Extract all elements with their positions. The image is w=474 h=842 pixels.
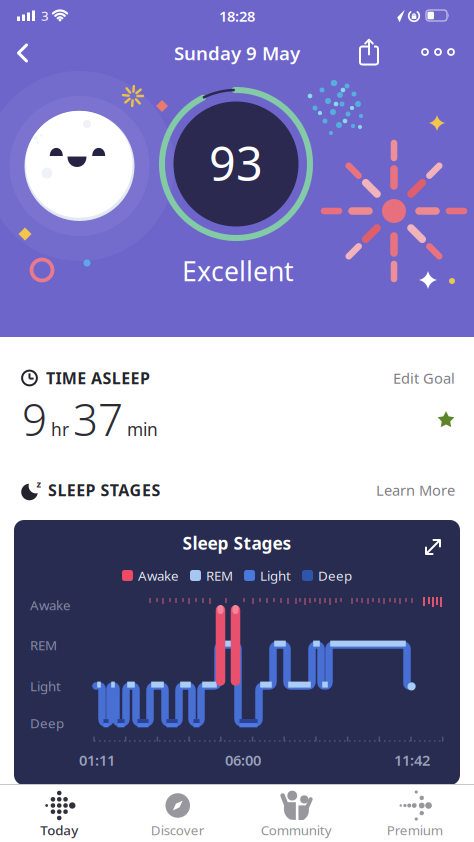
staticText: Community	[261, 821, 332, 839]
button[interactable]: Expand	[425, 539, 441, 555]
staticText: Deep	[318, 567, 352, 584]
button[interactable]: Learn More	[345, 480, 455, 500]
button[interactable]: Today	[3, 784, 115, 840]
staticText: REM	[206, 567, 233, 584]
staticText: hr	[51, 418, 69, 441]
staticText: min	[127, 418, 158, 441]
staticText: Sunday 9 May	[174, 41, 300, 65]
staticText: Awake	[138, 567, 179, 584]
staticText: z	[36, 478, 41, 490]
staticText: Awake	[30, 596, 71, 614]
button[interactable]: More	[421, 46, 455, 58]
staticText: 93	[209, 132, 263, 194]
staticText: REM	[30, 636, 57, 654]
staticText: 01:11	[79, 750, 115, 770]
staticText: Light	[30, 677, 61, 695]
staticText: 9	[22, 390, 47, 448]
button[interactable]: Community	[240, 784, 352, 840]
button[interactable]: Discover	[122, 784, 234, 840]
staticText: 06:00	[225, 750, 261, 770]
staticText: 3	[41, 7, 49, 24]
staticText: Sleep Stages	[182, 531, 291, 554]
staticText: Premium	[387, 821, 443, 839]
staticText: Edit Goal	[393, 368, 455, 388]
button[interactable]: Back	[16, 43, 30, 63]
staticText: TIME ASLEEP	[46, 367, 150, 389]
staticText: SLEEP STAGES	[48, 479, 160, 501]
button[interactable]: Edit Goal	[345, 368, 455, 388]
staticText: 37	[73, 390, 123, 448]
staticText: 18:28	[219, 6, 255, 26]
button[interactable]: Share	[359, 38, 379, 65]
staticText: Deep	[30, 714, 64, 732]
staticText: Discover	[151, 821, 205, 839]
button[interactable]: Premium	[359, 784, 471, 840]
staticText: 11:42	[394, 750, 430, 770]
staticText: Today	[40, 821, 78, 839]
staticText: Light	[260, 567, 291, 584]
staticText: Excellent	[182, 253, 294, 289]
staticText: Learn More	[376, 480, 455, 500]
